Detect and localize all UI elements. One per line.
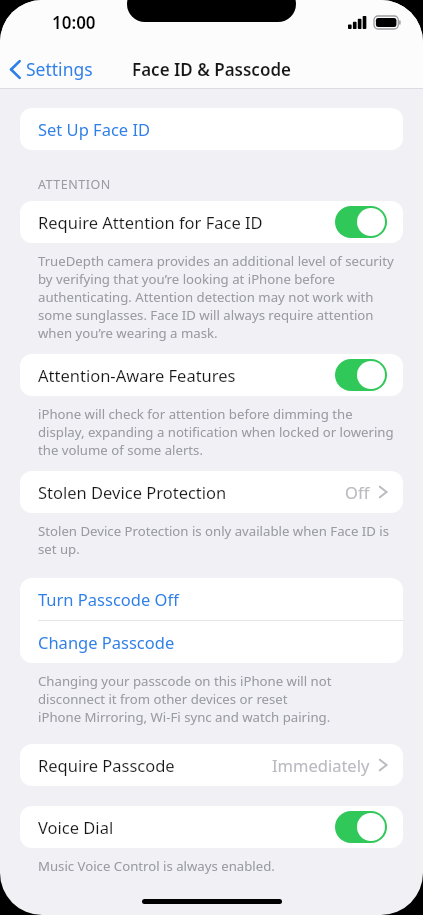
staticText: Voice Dial xyxy=(38,816,335,838)
staticText: some sunglasses. Face ID will always req… xyxy=(38,306,374,324)
staticText: Change Passcode xyxy=(38,631,175,653)
button[interactable]: Toggle on xyxy=(335,359,387,391)
staticText: when you’re wearing a mask. xyxy=(38,324,218,342)
staticText: Set Up Face ID xyxy=(38,118,151,140)
staticText: Turn Passcode Off xyxy=(38,588,179,610)
staticText: Settings xyxy=(26,57,93,81)
staticText: TrueDepth camera provides an additional … xyxy=(38,252,394,270)
button[interactable]: Set Up Face ID xyxy=(20,108,403,150)
staticText: iPhone Mirroring, Wi-Fi sync and watch p… xyxy=(38,708,331,726)
button[interactable]: Voice Dial xyxy=(20,806,403,848)
staticText: Immediately xyxy=(272,754,370,776)
staticText: the volume of some alerts. xyxy=(38,441,203,459)
staticText: ATTENTION xyxy=(38,176,111,193)
staticText: Off xyxy=(345,481,370,503)
staticText: by verifying that you’re looking at iPho… xyxy=(38,270,335,288)
staticText: iPhone will check for attention before d… xyxy=(38,405,353,423)
staticText: Stolen Device Protection xyxy=(38,481,345,503)
staticText: Require Attention for Face ID xyxy=(38,211,335,233)
button[interactable]: Attention-Aware Features xyxy=(20,354,403,396)
button[interactable]: Toggle on xyxy=(335,811,387,843)
staticText: 10:00 xyxy=(52,11,96,34)
button[interactable]: Toggle on xyxy=(335,206,387,238)
staticText: Face ID & Passcode xyxy=(132,58,291,81)
staticText: Stolen Device Protection is only availab… xyxy=(38,522,390,540)
staticText: disconnect it from other devices or rese… xyxy=(38,690,288,708)
staticText: authenticating. Attention detection may … xyxy=(38,288,374,306)
staticText: Music Voice Control is always enabled. xyxy=(38,857,275,875)
staticText: Changing your passcode on this iPhone wi… xyxy=(38,672,332,690)
button[interactable]: Require Passcode xyxy=(20,744,403,786)
staticText: display, expanding a notification when l… xyxy=(38,423,394,441)
staticText: Require Passcode xyxy=(38,754,272,776)
staticText: Attention-Aware Features xyxy=(38,364,335,386)
button[interactable]: Turn Passcode Off xyxy=(20,578,403,620)
button[interactable]: Stolen Device Protection xyxy=(20,471,403,513)
staticText: set up. xyxy=(38,540,80,558)
button[interactable]: Require Attention for Face ID xyxy=(20,201,403,243)
button[interactable]: Change Passcode xyxy=(20,621,403,663)
button[interactable]: Settings xyxy=(0,53,101,85)
